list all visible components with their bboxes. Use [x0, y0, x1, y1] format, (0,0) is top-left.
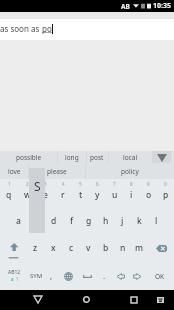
button[interactable]: f — [63, 207, 80, 234]
button[interactable]: Space — [79, 262, 96, 290]
staticText: g — [86, 215, 92, 227]
button[interactable]: n — [114, 234, 131, 262]
button[interactable]: AB12 — [0, 262, 28, 290]
button[interactable]: . — [96, 262, 112, 290]
staticText: local — [123, 153, 138, 162]
button[interactable]: SYM — [28, 262, 45, 290]
button[interactable]: local — [108, 151, 152, 163]
staticText: long — [65, 153, 79, 162]
staticText: please — [47, 167, 67, 176]
staticText: c — [69, 242, 74, 254]
staticText: post — [90, 153, 104, 162]
staticText: a — [11, 276, 14, 282]
button[interactable]: d — [45, 207, 63, 234]
button[interactable]: c — [62, 234, 80, 262]
button[interactable]: a — [9, 207, 27, 234]
staticText: p — [163, 189, 169, 201]
button[interactable]: More suggestions — [152, 151, 171, 163]
staticText: possible — [16, 153, 42, 162]
staticText: 10:35 — [153, 1, 171, 11]
staticText: j — [121, 215, 124, 227]
staticText: n — [120, 242, 126, 254]
staticText: t — [79, 189, 83, 201]
staticText: 5 — [79, 181, 82, 187]
button[interactable]: post — [86, 151, 108, 163]
button[interactable]: x — [44, 234, 62, 262]
staticText: z — [33, 242, 38, 254]
button[interactable]: , — [45, 262, 58, 290]
button[interactable]: 1 — [0, 179, 18, 207]
button[interactable]: OK — [145, 262, 174, 290]
button[interactable]: 6 — [89, 179, 106, 207]
button[interactable]: 2 — [18, 179, 36, 207]
staticText: AB — [121, 2, 130, 11]
button[interactable]: possible — [0, 151, 57, 163]
staticText: 1 — [8, 181, 11, 187]
button[interactable]: Recents — [118, 290, 150, 310]
staticText: . — [103, 270, 106, 281]
button[interactable]: l — [148, 207, 165, 234]
staticText: love — [8, 167, 21, 176]
button[interactable]: m — [131, 234, 148, 262]
staticText: SYM — [30, 272, 43, 280]
button[interactable]: k — [131, 207, 148, 234]
staticText: d — [51, 215, 57, 227]
staticText: a — [16, 215, 21, 227]
staticText: po — [42, 23, 52, 34]
button[interactable]: Change language — [58, 262, 79, 290]
staticText: S — [34, 178, 41, 194]
button[interactable]: as soon as — [0, 19, 174, 40]
staticText: w — [24, 189, 31, 201]
staticText: o — [146, 189, 152, 201]
button[interactable]: z — [26, 234, 44, 262]
button[interactable]: Shift — [0, 234, 26, 262]
button[interactable]: 0 — [157, 179, 174, 207]
button[interactable]: policy — [85, 163, 174, 179]
staticText: OK — [155, 272, 165, 281]
staticText: q — [6, 189, 12, 201]
button[interactable]: please — [28, 163, 85, 179]
button[interactable]: h — [97, 207, 114, 234]
button[interactable]: Move right — [129, 262, 145, 290]
staticText: m — [135, 242, 144, 254]
button[interactable]: love — [0, 163, 28, 179]
button[interactable]: s — [27, 207, 45, 234]
staticText: 3 — [44, 181, 47, 187]
button[interactable]: 9 — [140, 179, 157, 207]
staticText: r — [61, 189, 65, 201]
button[interactable]: Switch keyboard — [150, 290, 170, 310]
staticText: 9 — [147, 181, 150, 187]
staticText: u — [112, 189, 118, 201]
button[interactable]: 7 — [106, 179, 123, 207]
staticText: 2 — [26, 181, 29, 187]
staticText: AB12 — [8, 269, 21, 276]
button[interactable]: 4 — [54, 179, 72, 207]
staticText: as soon as — [0, 23, 42, 34]
button[interactable]: Hide keyboard — [22, 290, 54, 310]
button[interactable]: g — [80, 207, 97, 234]
staticText: v — [86, 242, 91, 254]
staticText: l — [155, 215, 158, 227]
staticText: 8 — [130, 181, 133, 187]
button[interactable]: Home — [70, 290, 103, 310]
button[interactable]: 5 — [72, 179, 89, 207]
staticText: 6 — [96, 181, 99, 187]
staticText: h — [103, 215, 109, 227]
button[interactable]: Backspace — [148, 234, 174, 262]
button[interactable]: 3 — [36, 179, 54, 207]
staticText: i — [130, 189, 133, 201]
button[interactable]: long — [57, 151, 86, 163]
staticText: 7 — [113, 181, 116, 187]
staticText: , — [50, 270, 53, 281]
button[interactable]: v — [80, 234, 97, 262]
staticText: 1 — [16, 276, 19, 282]
button[interactable]: Move left — [112, 262, 129, 290]
staticText: 0 — [164, 181, 167, 187]
button[interactable]: b — [97, 234, 114, 262]
staticText: y — [95, 189, 100, 201]
staticText: x — [51, 242, 56, 254]
staticText: f — [70, 215, 74, 227]
staticText: 4 — [62, 181, 65, 187]
button[interactable]: j — [114, 207, 131, 234]
button[interactable]: 8 — [123, 179, 140, 207]
